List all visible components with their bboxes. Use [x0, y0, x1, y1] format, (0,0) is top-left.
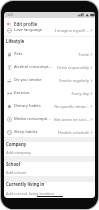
button[interactable]: Sleep habits	[4, 125, 95, 139]
staticText: Exercise	[14, 90, 52, 96]
staticText: School	[6, 161, 21, 167]
staticText: Edit profile	[14, 21, 38, 27]
staticText: Not active on social...	[53, 117, 89, 122]
button[interactable]: Do you smoke	[4, 73, 95, 87]
button[interactable]: Pets	[4, 47, 95, 61]
staticText: Media consumpti...	[14, 116, 52, 122]
staticText: Lifestyle	[6, 38, 25, 44]
staticText: Sleep habits	[14, 129, 52, 135]
staticText: Add school	[6, 170, 27, 175]
staticText: Do you smoke	[14, 77, 52, 83]
staticText: Flexible schedule	[53, 130, 89, 135]
staticText: Drink responsibly	[53, 65, 89, 70]
staticText: 12:51	[6, 13, 14, 17]
button[interactable]: Exercise	[4, 86, 95, 100]
staticText: Company	[6, 141, 27, 147]
button[interactable]: Add company	[4, 148, 95, 156]
staticText: I imagine myself getting married	[53, 28, 89, 33]
staticText: Pets	[14, 51, 52, 57]
staticText: Add company	[6, 150, 32, 155]
staticText: No specific dietary r...	[53, 104, 89, 109]
button[interactable]: Alcohol consumpti...	[4, 60, 95, 74]
button[interactable]: Add school	[4, 168, 95, 176]
staticText: Dietary habits	[14, 103, 52, 109]
staticText: Alcohol consumpti...	[14, 64, 52, 70]
staticText: Every day	[53, 91, 89, 96]
staticText: Add current living location	[6, 191, 55, 196]
button[interactable]: Love language	[4, 23, 95, 37]
button[interactable]: Dietary habits	[4, 99, 95, 113]
staticText: Smoke regularly	[53, 78, 89, 83]
staticText: Currently living in	[6, 181, 45, 187]
staticText: Turtle	[53, 52, 89, 57]
button[interactable]: Back	[5, 20, 12, 27]
button[interactable]: Add current living location	[4, 189, 95, 197]
button[interactable]: Media consumpti...	[4, 112, 95, 126]
staticText: Love language	[14, 27, 52, 33]
